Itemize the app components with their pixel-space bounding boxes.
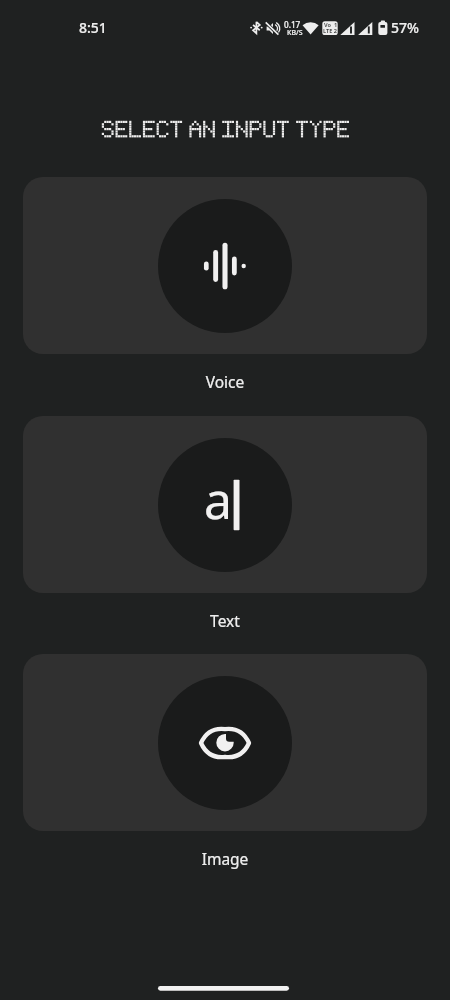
staticText: 57% — [391, 18, 419, 37]
button[interactable]: Text input — [23, 416, 427, 593]
staticText: 0.17 — [284, 19, 301, 30]
button[interactable]: Voice input — [23, 177, 427, 354]
staticText: Image — [23, 848, 427, 869]
staticText: a — [204, 466, 233, 534]
button[interactable]: Image input — [23, 654, 427, 831]
staticText: Text — [23, 610, 427, 631]
staticText: Voice — [23, 371, 427, 392]
staticText: KB/S — [287, 28, 303, 38]
staticText: LTE 2 — [323, 27, 338, 35]
staticText: 8:51 — [79, 18, 107, 37]
staticText: Vo 1 — [324, 21, 338, 29]
